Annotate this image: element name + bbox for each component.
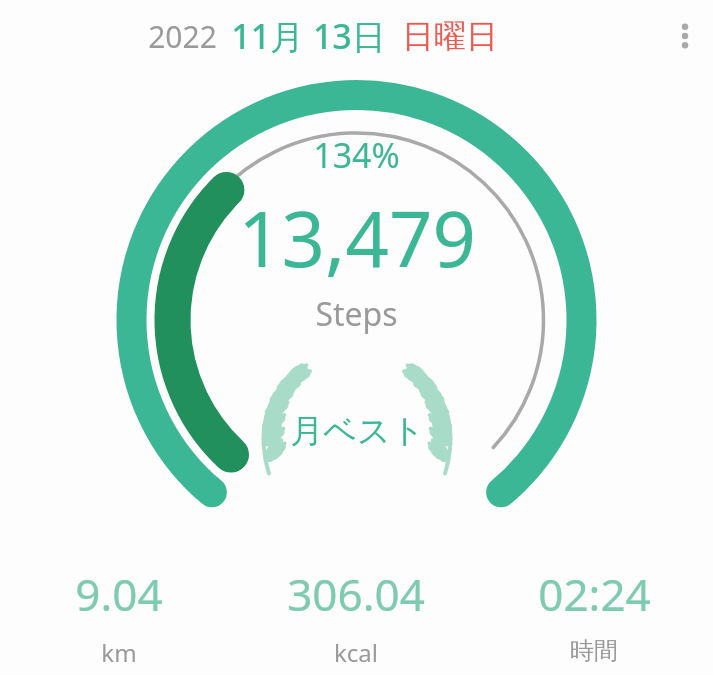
staticText: km xyxy=(101,636,137,669)
button[interactable]: 306.04 xyxy=(237,550,475,669)
staticText: kcal xyxy=(334,636,378,669)
button[interactable]: 02:24 xyxy=(475,550,713,666)
staticText: 2022 xyxy=(148,16,217,57)
staticText: 13,479 xyxy=(238,186,476,290)
staticText: 月ベスト xyxy=(290,410,425,452)
staticText: 306.04 xyxy=(287,564,425,624)
staticText: 日曜日 xyxy=(402,16,498,56)
staticText: 02:24 xyxy=(538,564,651,624)
staticText: 134% xyxy=(313,132,400,178)
button[interactable]: 9.04 xyxy=(0,550,237,669)
staticText: 時間 xyxy=(570,636,618,666)
staticText: 9.04 xyxy=(75,564,163,624)
staticText: Steps xyxy=(315,292,398,336)
button[interactable]: More options xyxy=(657,8,713,64)
staticText: 11月 13日 xyxy=(231,13,386,59)
